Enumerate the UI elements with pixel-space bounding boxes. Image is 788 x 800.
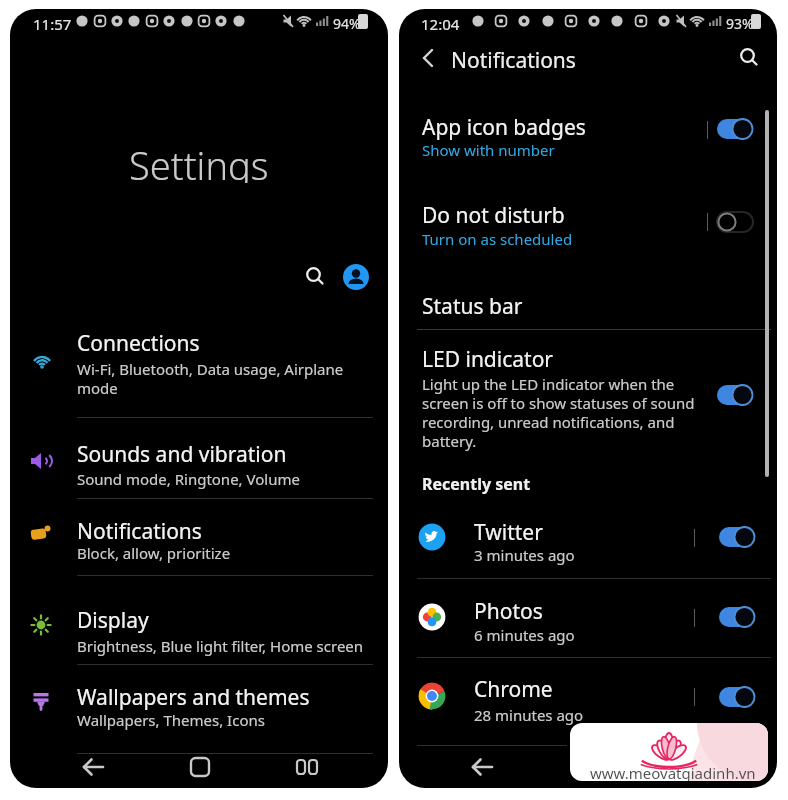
staticText: Light up the LED indicator when the	[422, 374, 675, 394]
staticText: 11:57	[33, 14, 72, 34]
button[interactable]	[343, 264, 369, 290]
staticText: recording, unread notifications, and	[422, 412, 675, 432]
button[interactable]	[80, 754, 106, 780]
button[interactable]	[469, 754, 495, 780]
staticText: LED indicator	[422, 345, 554, 374]
button[interactable]	[717, 385, 753, 405]
staticText: Settings	[129, 139, 269, 183]
staticText: Do not disturb	[422, 201, 565, 230]
button[interactable]	[10, 673, 388, 743]
button[interactable]	[190, 757, 210, 777]
staticText: Wi-Fi, Bluetooth, Data usage, Airplane	[77, 359, 344, 379]
staticText: 28 minutes ago	[474, 705, 584, 725]
staticText: mode	[77, 378, 118, 398]
button[interactable]	[304, 265, 326, 287]
staticText: Chrome	[474, 675, 553, 704]
staticText: 12:04	[421, 14, 460, 34]
staticText: Connections	[77, 329, 200, 358]
button[interactable]	[399, 109, 777, 161]
staticText: Notifications	[451, 46, 576, 75]
button[interactable]	[717, 212, 753, 232]
staticText: 3 minutes ago	[474, 545, 575, 565]
button[interactable]	[717, 119, 753, 139]
button[interactable]	[719, 607, 755, 627]
staticText: Brightness, Blue light filter, Home scre…	[77, 636, 364, 656]
staticText: Display	[77, 606, 149, 635]
button[interactable]	[399, 514, 777, 566]
staticText: Wallpapers, Themes, Icons	[77, 710, 265, 730]
staticText: screen is off to show statuses of sound	[422, 393, 695, 413]
staticText: 6 minutes ago	[474, 625, 575, 645]
button[interactable]	[399, 673, 777, 725]
button[interactable]	[399, 199, 777, 251]
button[interactable]	[10, 430, 388, 500]
button[interactable]	[719, 687, 755, 707]
staticText: Block, allow, prioritize	[77, 543, 231, 563]
button[interactable]	[419, 49, 437, 67]
button[interactable]	[399, 594, 777, 646]
staticText: 94%	[333, 14, 361, 33]
staticText: Twitter	[474, 518, 543, 547]
staticText: Notifications	[77, 517, 202, 546]
staticText: Recently sent	[422, 473, 531, 495]
button[interactable]	[10, 507, 388, 577]
button[interactable]	[296, 758, 318, 776]
staticText: App icon badges	[422, 113, 586, 142]
button[interactable]	[10, 319, 388, 389]
staticText: Turn on as scheduled	[422, 229, 573, 249]
staticText: Wallpapers and themes	[77, 683, 310, 712]
staticText: www.meovatgiadinh.vn	[590, 763, 756, 781]
button[interactable]	[399, 339, 777, 449]
staticText: Photos	[474, 597, 543, 626]
staticText: Sounds and vibration	[77, 440, 287, 469]
button[interactable]	[719, 527, 755, 547]
staticText: Status bar	[422, 292, 523, 321]
button[interactable]	[738, 46, 760, 68]
staticText: battery.	[422, 431, 477, 451]
button[interactable]	[10, 596, 388, 666]
staticText: Sound mode, Ringtone, Volume	[77, 469, 300, 489]
staticText: Show with number	[422, 140, 555, 160]
staticText: 93%	[726, 14, 754, 33]
